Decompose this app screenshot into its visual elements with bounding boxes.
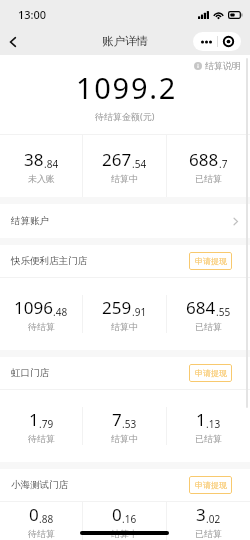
button[interactable]: More options — [193, 32, 241, 51]
staticText: 0 — [112, 503, 122, 526]
staticText: 申请提现 — [195, 480, 227, 490]
staticText: 结算中 — [111, 528, 138, 539]
staticText: 0 — [29, 503, 39, 526]
staticText: 259 — [102, 296, 132, 319]
staticText: 684 — [186, 296, 216, 319]
staticText: 1099.2 — [76, 68, 177, 107]
staticText: 未入账 — [28, 173, 55, 184]
staticText: 结算说明 — [205, 60, 241, 71]
staticText: 结算中 — [111, 433, 138, 444]
staticText: 1096 — [14, 296, 53, 319]
staticText: 688 — [189, 148, 219, 171]
staticText: 待结算 — [28, 528, 55, 539]
staticText: 申请提现 — [195, 256, 227, 266]
button[interactable]: Back — [0, 22, 26, 55]
staticText: 结算中 — [111, 321, 138, 332]
staticText: .84 — [44, 157, 59, 171]
staticText: 申请提现 — [195, 368, 227, 378]
staticText: 虹口门店 — [11, 367, 49, 379]
staticText: .88 — [39, 512, 54, 526]
staticText: 快乐便利店主门店 — [11, 255, 87, 267]
staticText: 结算中 — [111, 173, 138, 184]
staticText: 3 — [196, 503, 206, 526]
staticText: .02 — [206, 512, 221, 526]
staticText: 账户详情 — [102, 34, 148, 48]
staticText: .53 — [122, 417, 137, 431]
staticText: .91 — [132, 305, 147, 319]
staticText: 1 — [196, 408, 206, 431]
staticText: 已结算 — [195, 321, 222, 332]
staticText: 待结算 — [28, 433, 55, 444]
button[interactable]: 申请提现 — [189, 364, 232, 382]
staticText: 267 — [102, 148, 132, 171]
staticText: 结算账户 — [11, 215, 49, 227]
staticText: 38 — [24, 148, 44, 171]
staticText: 待结算 — [28, 321, 55, 332]
button[interactable]: 申请提现 — [189, 252, 232, 270]
staticText: 已结算 — [195, 173, 222, 184]
staticText: .55 — [216, 305, 231, 319]
staticText: 已结算 — [195, 433, 222, 444]
staticText: .79 — [39, 417, 54, 431]
staticText: .54 — [132, 157, 147, 171]
staticText: 待结算金额(元) — [95, 110, 155, 122]
staticText: .7 — [219, 157, 228, 171]
staticText: 13:00 — [18, 7, 47, 22]
staticText: 已结算 — [195, 528, 222, 539]
staticText: .48 — [53, 305, 68, 319]
staticText: .13 — [206, 417, 221, 431]
button[interactable]: 申请提现 — [189, 476, 232, 494]
button[interactable]: 结算账户 — [0, 204, 250, 238]
staticText: 1 — [29, 408, 39, 431]
staticText: 小海测试门店 — [11, 479, 68, 491]
staticText: 7 — [112, 408, 122, 431]
staticText: .16 — [122, 512, 137, 526]
button[interactable]: 结算说明 — [194, 60, 241, 71]
